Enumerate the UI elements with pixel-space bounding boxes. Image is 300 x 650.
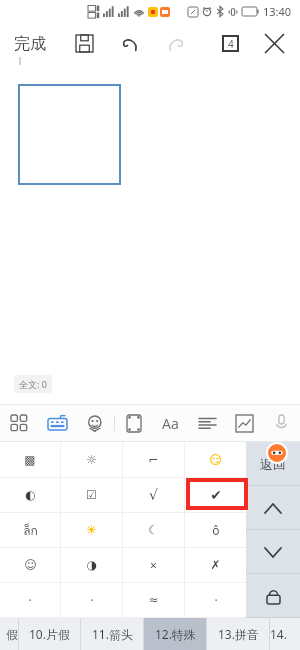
staticText: ล็ก bbox=[23, 521, 38, 540]
button[interactable]: · bbox=[0, 583, 60, 617]
button[interactable]: ล็ก bbox=[0, 513, 60, 547]
staticText: 4 bbox=[228, 37, 234, 51]
button[interactable]: Redo bbox=[161, 29, 191, 59]
staticText: ☼ bbox=[86, 453, 97, 467]
staticText: 13:40 bbox=[263, 4, 292, 19]
button[interactable]: ☀ bbox=[61, 513, 122, 547]
staticText: √ bbox=[149, 487, 158, 503]
button[interactable]: Widgets bbox=[0, 405, 38, 441]
staticText: · bbox=[214, 592, 218, 608]
button[interactable]: 假 bbox=[0, 618, 18, 650]
staticText: 😏 bbox=[209, 453, 222, 467]
button[interactable]: 14. bbox=[270, 618, 300, 650]
staticText: ☺ bbox=[24, 558, 37, 572]
staticText: · bbox=[90, 592, 94, 608]
staticText: ✔ bbox=[210, 487, 222, 503]
button[interactable]: Undo bbox=[115, 29, 145, 59]
button[interactable]: ◐ bbox=[0, 478, 60, 512]
button[interactable]: × bbox=[123, 548, 184, 582]
button[interactable]: ô bbox=[185, 513, 246, 547]
staticText: × bbox=[150, 557, 157, 573]
staticText: 14. bbox=[270, 626, 287, 642]
button[interactable]: 10.片假 bbox=[19, 618, 80, 650]
button[interactable]: ☾ bbox=[123, 513, 184, 547]
button[interactable]: Keyboard bbox=[38, 405, 76, 441]
button[interactable]: · bbox=[185, 583, 246, 617]
staticText: ◐ bbox=[25, 488, 36, 502]
button[interactable]: 完成 bbox=[0, 28, 56, 60]
button[interactable]: 13.拼音 bbox=[207, 618, 269, 650]
staticText: 假 bbox=[6, 627, 18, 642]
staticText: ☾ bbox=[148, 523, 159, 537]
button[interactable]: Lock bbox=[246, 574, 300, 618]
button[interactable]: 11.箭头 bbox=[81, 618, 143, 650]
staticText: 13.拼音 bbox=[218, 626, 259, 642]
button[interactable]: · bbox=[61, 583, 122, 617]
staticText: 12.特殊 bbox=[155, 626, 196, 642]
staticText: 全文: 0 bbox=[19, 378, 47, 390]
button[interactable]: Assistant bbox=[266, 442, 288, 464]
button[interactable]: Align bbox=[189, 405, 226, 441]
button[interactable]: Crop bbox=[115, 405, 152, 441]
button[interactable]: 😏 bbox=[185, 442, 246, 477]
button[interactable]: ✔ bbox=[185, 478, 246, 512]
button[interactable]: ☑ bbox=[61, 478, 122, 512]
staticText: ▩ bbox=[24, 453, 36, 467]
staticText: ☑ bbox=[86, 488, 97, 502]
staticText: 11.箭头 bbox=[92, 626, 133, 642]
staticText: ⌐ bbox=[148, 453, 159, 467]
button[interactable]: Save bbox=[70, 29, 99, 58]
staticText: 返回 bbox=[260, 456, 286, 472]
button[interactable]: ⌐ bbox=[123, 442, 184, 477]
button[interactable]: ≈ bbox=[123, 583, 184, 617]
button[interactable]: Down bbox=[246, 530, 300, 574]
button[interactable]: Text style bbox=[152, 405, 189, 441]
staticText: 完成 bbox=[14, 34, 46, 54]
staticText: ô bbox=[212, 522, 220, 538]
button[interactable]: Emoji bbox=[76, 405, 114, 441]
button[interactable]: Up bbox=[246, 486, 300, 530]
button[interactable]: Pages bbox=[216, 29, 245, 58]
staticText: 10.片假 bbox=[29, 626, 70, 642]
button[interactable]: Insert image bbox=[226, 405, 263, 441]
button[interactable]: ▩ bbox=[0, 442, 60, 477]
button[interactable]: ☼ bbox=[61, 442, 122, 477]
button[interactable]: ☺ bbox=[0, 548, 60, 582]
staticText: ≈ bbox=[148, 593, 159, 607]
button[interactable]: ◑ bbox=[61, 548, 122, 582]
staticText: ✗ bbox=[210, 558, 221, 572]
staticText: · bbox=[28, 592, 32, 608]
button[interactable]: 返回 bbox=[246, 442, 300, 486]
button[interactable]: √ bbox=[123, 478, 184, 512]
staticText: ☀ bbox=[86, 523, 97, 537]
staticText: Aa bbox=[162, 414, 179, 433]
button[interactable]: Close bbox=[259, 28, 290, 59]
button[interactable]: ✗ bbox=[185, 548, 246, 582]
staticText: ◑ bbox=[86, 558, 97, 572]
button[interactable]: 全文: 0 bbox=[14, 375, 52, 393]
button[interactable]: 12.特殊 bbox=[144, 618, 206, 650]
button[interactable]: Voice bbox=[263, 405, 300, 441]
